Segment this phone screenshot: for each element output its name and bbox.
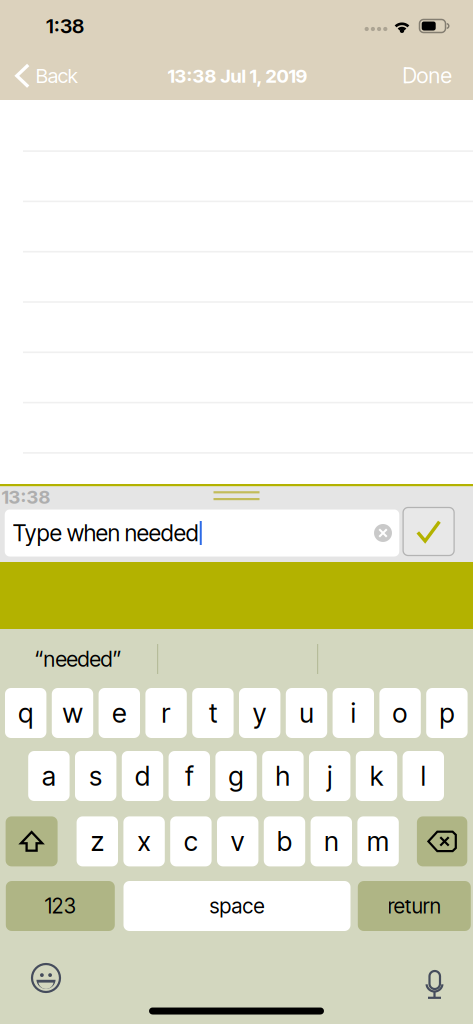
button[interactable]: g [215,751,257,801]
button[interactable]: w [52,688,93,738]
button[interactable]: q [5,688,46,738]
button[interactable]: z [77,816,118,866]
button[interactable]: Confirm [403,507,454,555]
staticText: x [138,825,151,858]
button[interactable]: u [286,688,327,738]
staticText: “needed” [34,646,121,672]
button[interactable]: k [356,751,397,801]
staticText: 123 [45,893,76,918]
staticText: f [185,760,193,792]
staticText: 1:38 [46,14,84,38]
staticText: w [62,697,82,729]
button[interactable]: s [75,751,116,801]
staticText: return [388,893,441,918]
staticText: j [327,760,332,792]
staticText: p [439,697,454,729]
staticText: i [351,697,356,729]
button[interactable]: j [309,751,350,801]
button[interactable]: x [123,816,165,866]
staticText: Done [402,63,451,88]
staticText: l [421,760,426,792]
button[interactable]: r [145,688,187,738]
button[interactable]: f [169,751,210,801]
button[interactable]: Done [393,56,460,95]
staticText: g [229,760,244,792]
staticText: t [209,697,217,729]
staticText: b [277,825,292,858]
staticText: 13:38 [1,486,50,508]
staticText: v [231,825,245,858]
button[interactable]: a [28,751,70,801]
button[interactable]: n [311,816,352,866]
button[interactable]: o [379,688,421,738]
button[interactable]: e [99,688,140,738]
staticText: k [370,760,383,792]
button[interactable]: 123 [6,881,115,931]
button[interactable]: Emoji [23,955,69,1001]
staticText: h [275,760,290,792]
button[interactable]: return [358,881,471,931]
button[interactable]: y [239,688,280,738]
button[interactable]: b [264,816,305,866]
staticText: z [91,825,104,858]
staticText: q [18,697,33,729]
staticText: m [367,825,389,858]
staticText: y [253,697,267,729]
button[interactable]: Back [7,56,86,95]
staticText: s [89,760,102,792]
button[interactable]: m [357,816,399,866]
staticText: d [135,760,150,792]
staticText: o [393,697,408,729]
button[interactable]: h [262,751,304,801]
button[interactable]: d [122,751,163,801]
staticText: Type when needed [13,519,199,547]
button[interactable]: i [333,688,374,738]
staticText: Back [36,64,78,88]
staticText: space [209,893,264,918]
button[interactable]: Delete [417,816,467,866]
button[interactable]: l [403,751,444,801]
staticText: e [112,697,126,729]
button[interactable]: c [170,816,212,866]
button[interactable]: space [123,881,350,931]
button[interactable]: Shift [6,816,58,866]
staticText: r [162,697,171,729]
button[interactable]: v [217,816,258,866]
staticText: a [42,760,56,792]
staticText: 13:38 Jul 1, 2019 [167,65,307,87]
staticText: n [324,825,338,858]
button[interactable]: t [192,688,234,738]
button[interactable]: p [426,688,468,738]
staticText: u [299,697,313,729]
staticText: c [184,825,198,858]
button[interactable]: Dictate [416,957,452,1003]
button[interactable]: Type when needed [5,509,399,556]
